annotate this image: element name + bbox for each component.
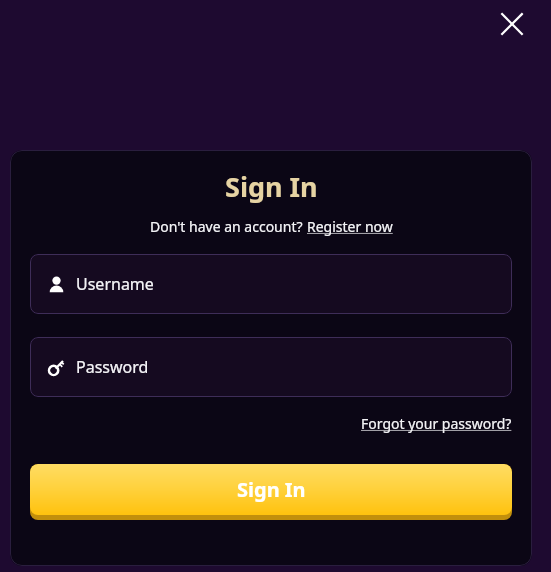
staticText: Sign In [225,168,318,205]
staticText: Password [76,356,149,378]
staticText: Forgot your password? [361,414,512,433]
staticText: Sign In [237,476,306,503]
button[interactable]: Password [30,337,512,397]
staticText: Register now [307,217,393,236]
button[interactable]: Username [30,254,512,314]
button[interactable]: Register now [307,217,393,236]
button[interactable]: Forgot your password? [359,412,514,435]
button[interactable]: Close [488,0,536,48]
staticText: Username [76,273,154,295]
staticText: Don't have an account? [150,217,307,236]
button[interactable]: Sign In [30,464,512,520]
